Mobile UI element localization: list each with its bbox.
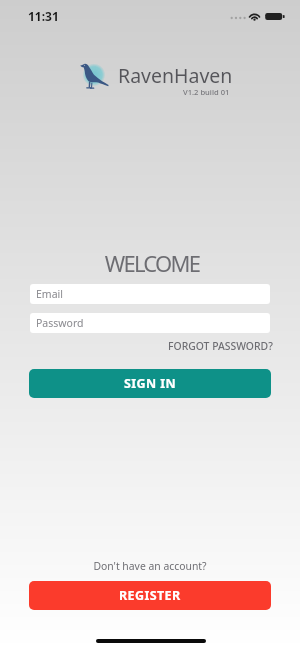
button[interactable]: REGISTER <box>29 581 271 610</box>
button[interactable]: Password <box>30 313 270 333</box>
staticText: Password <box>36 316 84 330</box>
staticText: REGISTER <box>119 587 181 604</box>
staticText: RavenHaven <box>118 62 233 89</box>
button[interactable]: Email <box>30 284 270 304</box>
staticText: Email <box>36 287 63 301</box>
button[interactable]: FORGOT PASSWORD? <box>166 335 275 357</box>
staticText: 11:31 <box>28 8 59 24</box>
staticText: V1.2 build 01 <box>183 87 230 97</box>
staticText: Don't have an account? <box>0 559 300 573</box>
button[interactable]: SIGN IN <box>29 369 271 398</box>
staticText: WELCOME <box>2 248 300 278</box>
staticText: SIGN IN <box>124 375 177 392</box>
staticText: FORGOT PASSWORD? <box>168 339 273 353</box>
